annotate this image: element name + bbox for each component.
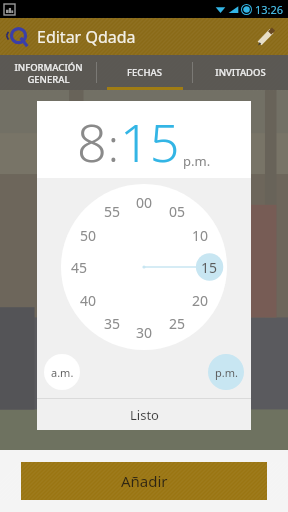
staticText: 50 bbox=[80, 226, 97, 244]
button[interactable]: FECHAS bbox=[97, 55, 192, 90]
staticText: 8 bbox=[77, 106, 107, 177]
staticText: 45 bbox=[71, 258, 88, 276]
staticText: 35 bbox=[104, 314, 121, 332]
staticText: 00 bbox=[136, 193, 153, 211]
button[interactable]: INVITADOS bbox=[193, 55, 288, 90]
staticText: 40 bbox=[80, 291, 97, 309]
staticText: 15 bbox=[120, 106, 180, 177]
button[interactable]: a.m. bbox=[44, 354, 80, 390]
button[interactable]: p.m. bbox=[208, 354, 244, 390]
button[interactable]: Back bbox=[5, 24, 31, 50]
staticText: 30 bbox=[136, 323, 153, 341]
staticText: 15 bbox=[201, 258, 218, 276]
button[interactable]: Listo bbox=[37, 399, 251, 430]
button[interactable]: INFORMACIÓN GENERAL bbox=[0, 55, 96, 90]
staticText: p.m. bbox=[215, 365, 238, 380]
staticText: 25 bbox=[169, 314, 186, 332]
staticText: 13:26 bbox=[255, 2, 284, 17]
staticText: 10 bbox=[192, 226, 209, 244]
staticText: Añadir bbox=[121, 471, 168, 491]
staticText: FECHAS bbox=[127, 66, 162, 79]
staticText: 55 bbox=[104, 202, 121, 220]
staticText: a.m. bbox=[51, 365, 74, 380]
staticText: p.m. bbox=[183, 152, 211, 170]
staticText: INVITADOS bbox=[215, 66, 266, 79]
button[interactable]: Añadir bbox=[21, 462, 267, 500]
staticText: Editar Qdada bbox=[37, 26, 136, 48]
staticText: 20 bbox=[192, 291, 209, 309]
staticText: INFORMACIÓN GENERAL bbox=[14, 61, 83, 85]
button[interactable]: Edit bbox=[252, 23, 280, 51]
staticText: : bbox=[108, 115, 119, 175]
staticText: 05 bbox=[169, 202, 186, 220]
staticText: Listo bbox=[130, 406, 159, 424]
